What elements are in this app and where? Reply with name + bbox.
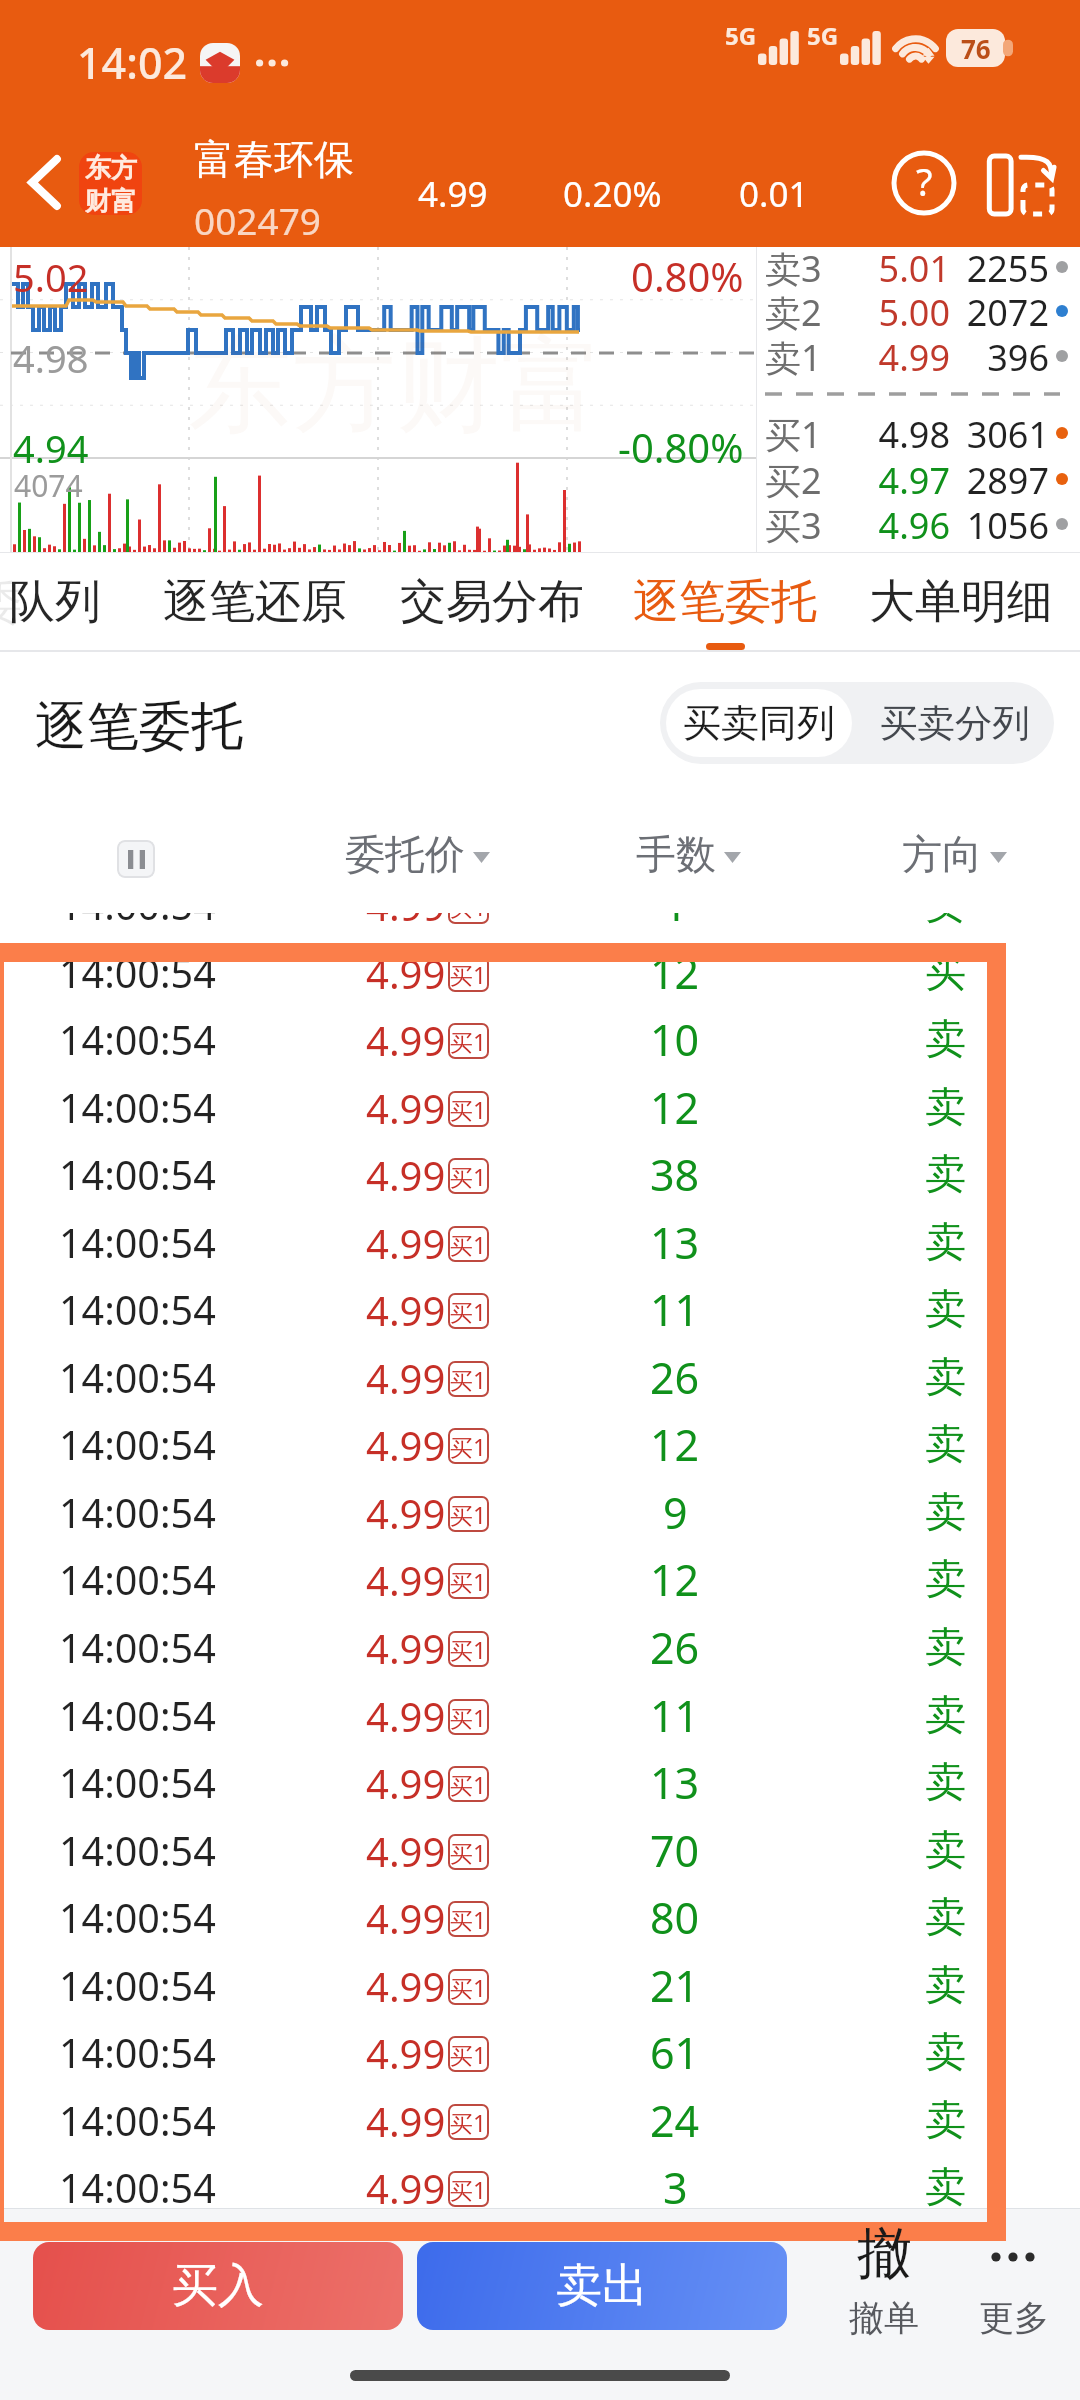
button[interactable]: 买入 [33, 2242, 403, 2330]
staticText: 交易分布 [400, 573, 584, 631]
staticText: 4.98 [864, 410, 950, 456]
button[interactable]: 卖2 [757, 288, 1080, 334]
staticText: 14:00:54 [59, 1418, 216, 1472]
staticText: 买1 [450, 1229, 487, 1260]
staticText: 76 [961, 31, 991, 66]
staticText: 14:00:54 [59, 2161, 216, 2208]
staticText: 卖 [925, 1487, 966, 1539]
staticText: 东方财富 [188, 321, 604, 452]
button[interactable]: 卖1 [757, 333, 1080, 379]
staticText: 14:00:54 [59, 2026, 216, 2080]
staticText: 卖 [925, 1690, 966, 1742]
staticText: ? [916, 155, 933, 207]
staticText: 24 [650, 2091, 700, 2150]
staticText: 14:00:54 [59, 913, 216, 932]
button[interactable]: 14:00:54 [0, 913, 1080, 938]
button[interactable]: 14:00:54 [0, 1682, 1080, 1749]
button[interactable]: Share [988, 152, 1054, 218]
staticText: 更多 [979, 2296, 1049, 2340]
button[interactable]: 方向 [844, 795, 1064, 913]
button[interactable]: 14:00:54 [0, 1411, 1080, 1478]
staticText: 卖 [925, 1960, 966, 2012]
staticText: 买1 [450, 1634, 487, 1665]
staticText: 卖 [925, 1825, 966, 1877]
button[interactable]: 14:00:54 [0, 2087, 1080, 2154]
button[interactable]: 卖出 [417, 2242, 787, 2330]
button[interactable]: 逐笔还原 [143, 553, 367, 652]
staticText: 大单明细 [869, 573, 1053, 631]
staticText: 买1 [450, 1161, 487, 1192]
staticText: 4.99 [366, 1959, 446, 2013]
button[interactable]: 买2 [757, 456, 1080, 502]
button[interactable]: Back [8, 110, 86, 247]
staticText: 买1 [450, 1094, 487, 1125]
staticText: 1 [663, 913, 688, 934]
staticText: -0.80% [618, 420, 744, 474]
staticText: 4.99 [366, 1553, 446, 1607]
staticText: 14:00:54 [59, 1283, 216, 1337]
staticText: 卖1 [765, 333, 822, 379]
staticText: 买卖同列 [683, 699, 835, 747]
button[interactable]: 14:00:54 [0, 2019, 1080, 2086]
staticText: 13 [650, 1753, 700, 1812]
staticText: 14:00:54 [59, 1824, 216, 1878]
staticText: 14:00:54 [59, 1553, 216, 1607]
button[interactable]: 14:00:54 [0, 1141, 1080, 1208]
staticText: 4.94 [13, 422, 89, 474]
button[interactable]: 14:00:54 [0, 1006, 1080, 1073]
staticText: 14:00:54 [59, 1081, 216, 1135]
button[interactable]: 14:00:54 [0, 1817, 1080, 1884]
button[interactable]: 逐笔委托 [613, 553, 837, 652]
button[interactable]: Help [891, 150, 957, 216]
button[interactable]: 14:00:54 [0, 1479, 1080, 1546]
staticText: 38 [650, 1145, 700, 1204]
staticText: 4.97 [864, 456, 950, 502]
staticText: 买1 [450, 1431, 487, 1462]
staticText: 4.99 [366, 1621, 446, 1675]
button[interactable]: 交易分布 [380, 553, 604, 652]
staticText: 手数 [636, 829, 716, 879]
button[interactable]: 买卖分列 [856, 682, 1054, 764]
button[interactable]: 撤 [814, 2241, 954, 2341]
staticText: 逐笔还原 [163, 573, 347, 631]
staticText: 12 [650, 1415, 700, 1474]
button[interactable]: 买卖同列 [666, 689, 852, 757]
staticText: 卖 [925, 1554, 966, 1606]
button[interactable]: 14:00:54 [0, 939, 1080, 1006]
button[interactable]: Pause [117, 840, 155, 878]
staticText: 买1 [450, 1904, 487, 1935]
staticText: 10 [650, 1010, 700, 1069]
staticText: 4.99 [366, 1283, 446, 1337]
button[interactable]: 14:00:54 [0, 1074, 1080, 1141]
staticText: 方向 [902, 829, 982, 879]
button[interactable]: 大单明细 [849, 553, 1073, 652]
staticText: 撤单 [849, 2296, 919, 2340]
button[interactable]: 买3 [757, 501, 1080, 547]
button[interactable]: 14:00:54 [0, 1209, 1080, 1276]
staticText: 买1 [765, 410, 822, 456]
button[interactable]: 14:00:54 [0, 1276, 1080, 1343]
staticText: 14:00:54 [59, 1486, 216, 1540]
button[interactable]: More [944, 2241, 1080, 2341]
button[interactable]: 手数 [578, 795, 798, 913]
staticText: 61 [650, 2023, 700, 2082]
button[interactable]: 14:00:54 [0, 1884, 1080, 1951]
button[interactable]: 14:00:54 [0, 1614, 1080, 1681]
button[interactable]: 14:00:54 [0, 1546, 1080, 1613]
staticText: 买1 [450, 2039, 487, 2070]
button[interactable]: 14:00:54 [0, 2154, 1080, 2208]
button[interactable]: 队列 [0, 553, 167, 652]
button[interactable]: 14:00:54 [0, 1749, 1080, 1816]
button[interactable]: 委托价 [307, 795, 527, 913]
staticText: 4.99 [366, 1824, 446, 1878]
button[interactable]: 卖3 [757, 244, 1080, 290]
button[interactable]: 14:00:54 [0, 1344, 1080, 1411]
button[interactable]: 14:00:54 [0, 1952, 1080, 2019]
staticText: 4.99 [366, 1081, 446, 1135]
button[interactable]: 买1 [757, 410, 1080, 456]
staticText: 买1 [450, 1566, 487, 1597]
button[interactable]: East Money [79, 152, 142, 215]
staticText: 13 [650, 1213, 700, 1272]
staticText: 70 [650, 1821, 700, 1880]
staticText: 14:00:54 [59, 1621, 216, 1675]
